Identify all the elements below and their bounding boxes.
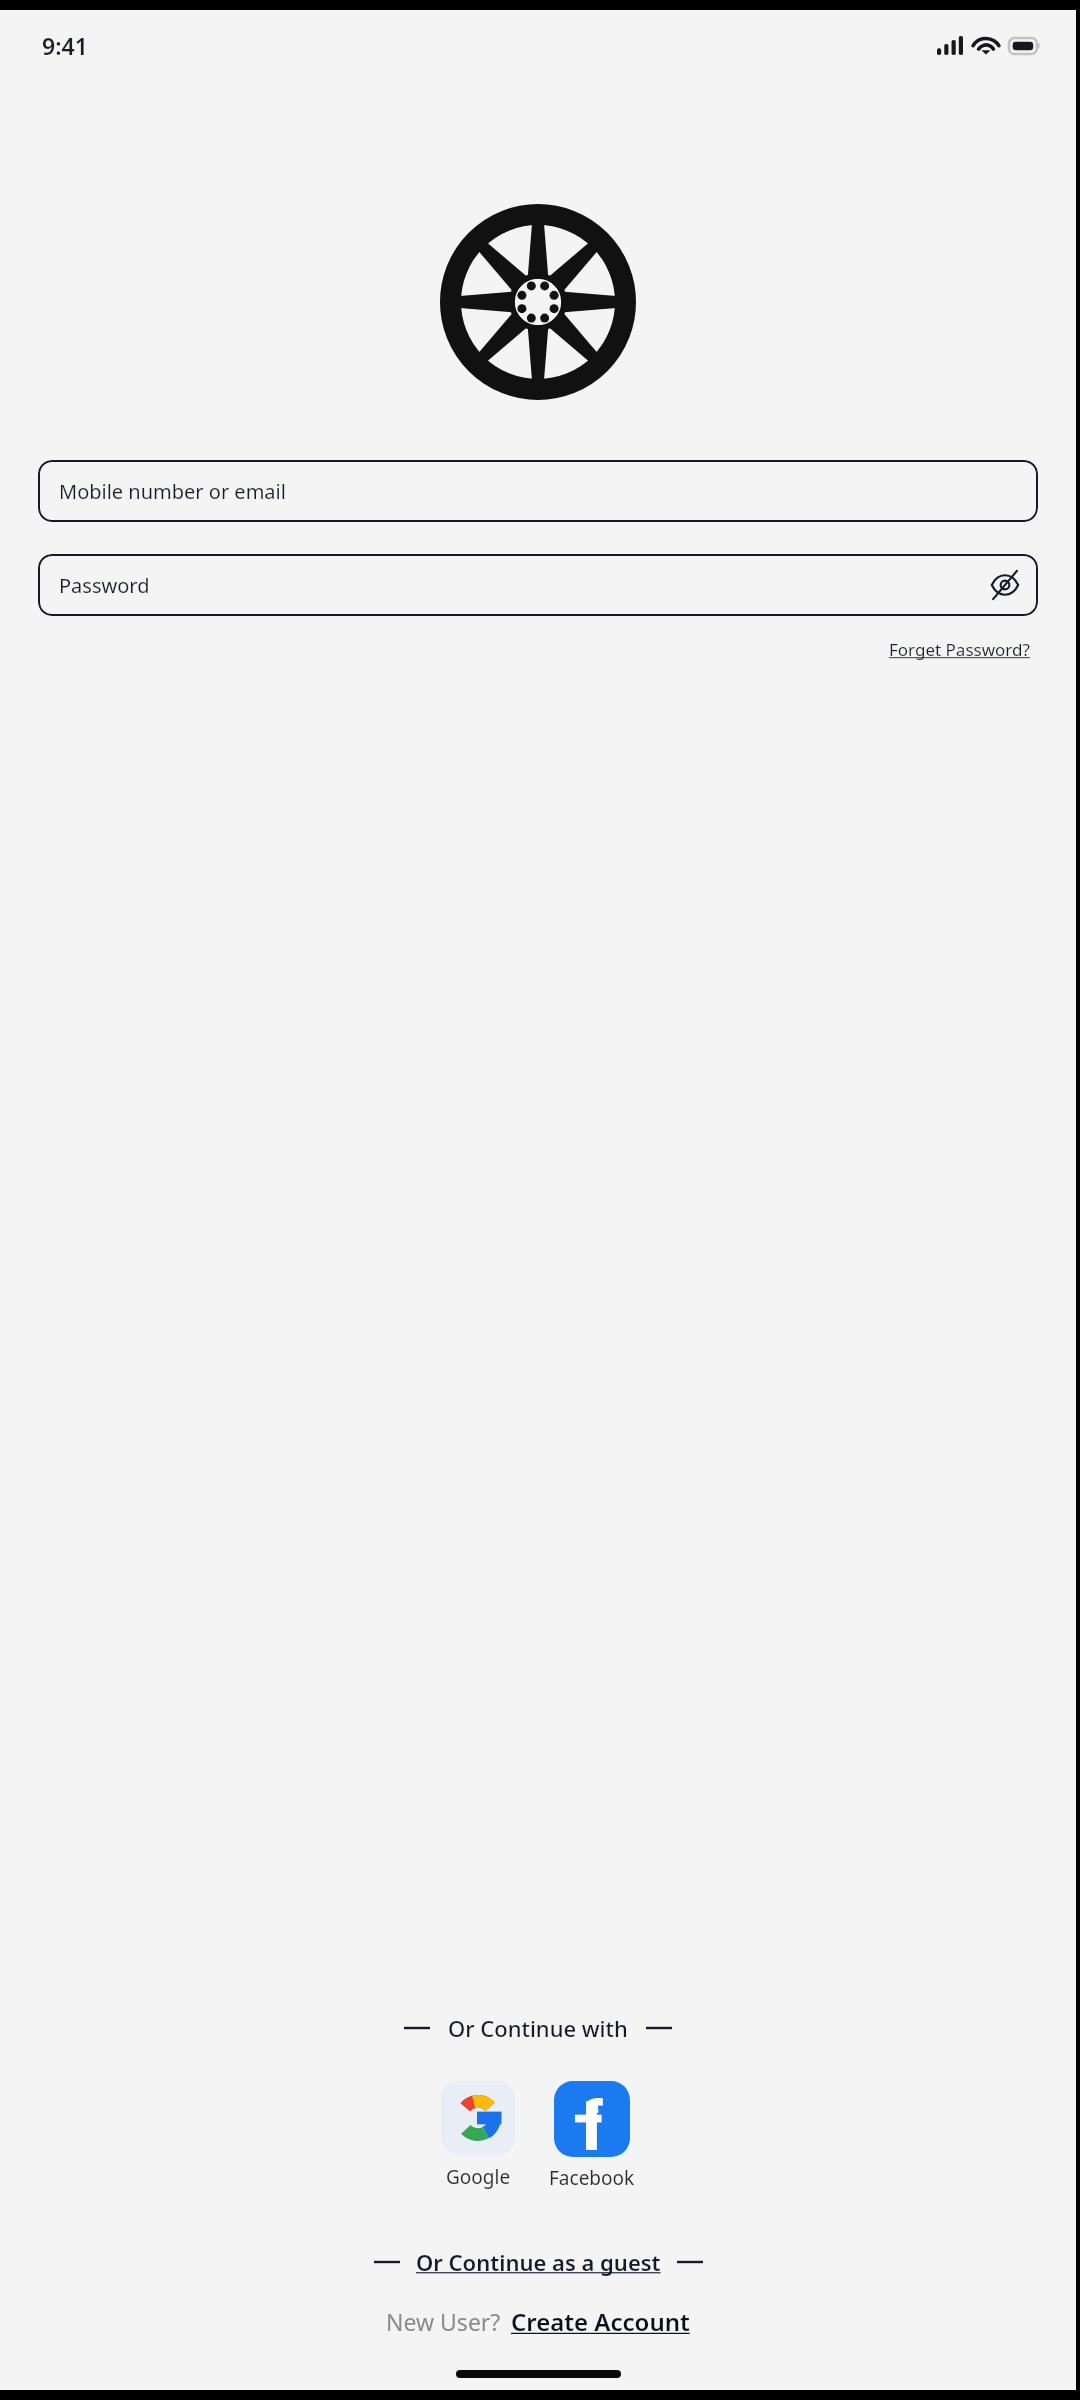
staticText: Or Continue with [448,2013,628,2043]
staticText: New User? [386,2306,501,2337]
button[interactable]: Mobile number or email [38,460,1038,522]
button[interactable]: Forget Password? [885,634,1034,665]
staticText: Password [59,572,150,599]
button[interactable]: Facebook [543,2081,641,2191]
button[interactable]: Or Continue as a guest [0,2247,1076,2277]
staticText: Google [446,2164,511,2190]
staticText: Forget Password? [889,638,1030,661]
button[interactable]: Google [435,2081,521,2190]
button[interactable]: Password [38,554,1038,616]
button[interactable]: Show password [988,568,1022,602]
staticText: 9:41 [42,30,88,61]
staticText: Create Account [511,2305,690,2338]
staticText: Facebook [549,2165,635,2191]
button[interactable]: Create Account [511,2305,690,2338]
staticText: Or Continue as a guest [416,2247,661,2277]
staticText: Mobile number or email [59,478,286,505]
